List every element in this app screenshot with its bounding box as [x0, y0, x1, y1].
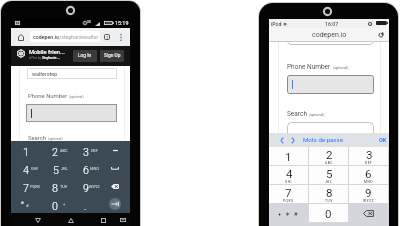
- button[interactable]: Log In: [73, 50, 97, 62]
- button[interactable]: codepen.io: [30, 31, 100, 42]
- button[interactable]: 5: [40, 159, 70, 177]
- staticText: ABC: [325, 161, 333, 165]
- button[interactable]: [100, 141, 130, 159]
- staticText: Stephanie ...: [42, 56, 60, 60]
- button[interactable]: Backspace: [349, 204, 388, 222]
- button[interactable]: Home: [65, 214, 77, 226]
- button[interactable]: .: [70, 195, 100, 213]
- staticText: 5: [53, 164, 59, 177]
- staticText: TUV: [60, 184, 68, 189]
- staticText: (optional): [333, 66, 349, 70]
- button[interactable]: Keyboard: [117, 214, 129, 226]
- staticText: a Pen by: [29, 56, 42, 60]
- staticText: 2: [52, 146, 58, 159]
- staticText: DEF: [365, 161, 373, 165]
- button[interactable]: Next: [100, 195, 130, 213]
- button[interactable]: *: [11, 195, 40, 213]
- button[interactable]: Next field: [287, 135, 298, 146]
- staticText: 1: [285, 150, 292, 164]
- button[interactable]: 2: [309, 147, 348, 165]
- other: Backspace: [363, 210, 374, 217]
- staticText: 15:19: [115, 20, 129, 26]
- staticText: OK: [379, 137, 387, 144]
- button[interactable]: Home: [15, 31, 27, 43]
- button[interactable]: 8: [309, 185, 348, 203]
- button[interactable]: 1: [11, 141, 40, 159]
- staticText: #: [26, 203, 29, 208]
- staticText: GHI: [31, 166, 38, 171]
- staticText: 16:07: [325, 21, 339, 27]
- staticText: 1: [23, 146, 29, 159]
- button[interactable]: 7: [269, 185, 308, 203]
- button[interactable]: [287, 75, 374, 94]
- button[interactable]: 5: [309, 166, 348, 184]
- button[interactable]: [100, 159, 130, 177]
- staticText: 7: [285, 186, 292, 200]
- staticText: walterstep: [32, 71, 58, 77]
- button[interactable]: Recents: [97, 214, 109, 226]
- button[interactable]: 4: [11, 159, 40, 177]
- staticText: 6: [365, 167, 372, 181]
- staticText: 2: [326, 148, 333, 162]
- staticText: Search: [28, 135, 47, 142]
- staticText: DEF: [91, 148, 98, 153]
- button[interactable]: + ∗ #: [269, 204, 308, 222]
- staticText: WXYZ: [363, 199, 374, 203]
- button[interactable]: 7: [11, 177, 40, 195]
- button[interactable]: 9: [349, 185, 388, 203]
- button[interactable]: More options: [115, 31, 127, 43]
- staticText: 8: [52, 182, 58, 195]
- staticText: codepen.io: [312, 31, 347, 39]
- staticText: + ∗ #: [278, 210, 299, 217]
- staticText: /stephaniewalter: [59, 34, 99, 40]
- staticText: 3: [83, 146, 89, 159]
- staticText: *: [21, 200, 24, 208]
- staticText: Sign Up: [104, 53, 121, 59]
- staticText: 4: [23, 164, 29, 177]
- button[interactable]: 3: [70, 141, 100, 159]
- button[interactable]: Backspace: [100, 177, 130, 195]
- staticText: Phone Number: [287, 63, 331, 71]
- button[interactable]: 8: [40, 177, 70, 195]
- staticText: GHI: [285, 180, 293, 184]
- staticText: JKL: [325, 180, 333, 184]
- button[interactable]: 4: [269, 166, 308, 184]
- button[interactable]: 3: [349, 147, 388, 165]
- button[interactable]: 9: [70, 177, 100, 195]
- button[interactable]: 0: [40, 195, 70, 213]
- staticText: PQRS: [30, 184, 40, 189]
- staticText: 5: [326, 167, 333, 181]
- staticText: 7: [23, 182, 29, 195]
- button[interactable]: Previous field: [276, 135, 287, 146]
- staticText: WXYZ: [89, 184, 100, 189]
- button[interactable]: 0: [309, 204, 348, 222]
- staticText: +: [63, 202, 66, 207]
- staticText: ABC: [60, 148, 68, 153]
- staticText: 9: [83, 182, 89, 195]
- staticText: (optional): [69, 95, 84, 99]
- button[interactable]: Back: [32, 214, 44, 226]
- staticText: PQRS: [283, 199, 294, 203]
- staticText: 3G: [87, 20, 91, 23]
- other: Next: [109, 198, 121, 210]
- staticText: Mots de passe: [303, 136, 343, 143]
- button[interactable]: [26, 104, 117, 122]
- staticText: 9: [365, 186, 372, 200]
- staticText: 1: [106, 35, 109, 39]
- button[interactable]: 1: [269, 147, 308, 165]
- staticText: TUV: [325, 199, 333, 203]
- button[interactable]: Tabs: [101, 31, 113, 43]
- staticText: .: [84, 200, 87, 213]
- button[interactable]: 6: [70, 159, 100, 177]
- button[interactable]: 2: [40, 141, 70, 159]
- staticText: Mobile frien...: [29, 49, 65, 56]
- button[interactable]: Reload: [375, 29, 387, 41]
- staticText: MNO: [90, 166, 99, 171]
- staticText: 0: [325, 207, 332, 221]
- button[interactable]: Sign Up: [100, 50, 124, 62]
- staticText: MNO: [364, 180, 373, 184]
- staticText: iPod: [271, 21, 282, 27]
- button[interactable]: OK: [377, 135, 388, 145]
- button[interactable]: walterstep: [27, 68, 117, 79]
- button[interactable]: 6: [349, 166, 388, 184]
